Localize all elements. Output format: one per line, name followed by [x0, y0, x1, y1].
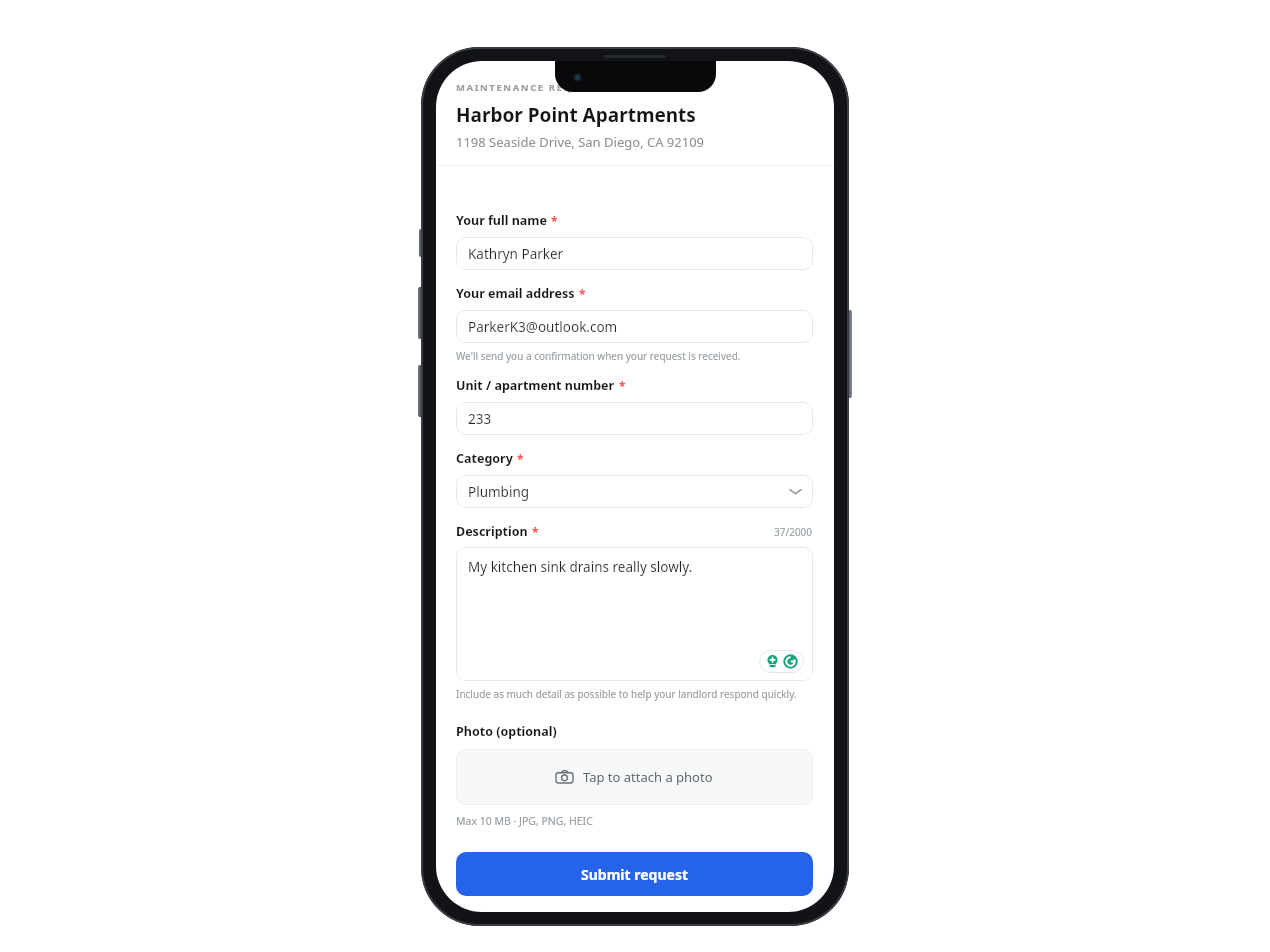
staticText: Max 10 MB · JPG, PNG, HEIC	[456, 814, 593, 828]
staticText: Kathryn Parker	[468, 245, 564, 263]
staticText: *	[551, 213, 558, 229]
staticText: Include as much detail as possible to he…	[456, 687, 797, 701]
staticText: Description	[456, 523, 528, 540]
staticText: Harbor Point Apartments	[456, 102, 696, 128]
staticText: 37/2000	[774, 525, 813, 539]
staticText: Photo (optional)	[456, 723, 557, 740]
staticText: Submit request	[581, 865, 688, 884]
button[interactable]: My kitchen sink drains really slowly.	[456, 547, 813, 681]
staticText: Category	[456, 450, 513, 467]
button[interactable]: 233	[456, 402, 813, 435]
staticText: *	[532, 524, 539, 540]
staticText: My kitchen sink drains really slowly.	[468, 558, 693, 576]
staticText: ParkerK3@outlook.com	[468, 318, 618, 336]
button[interactable]: Grammarly suggestions	[759, 650, 804, 673]
button[interactable]: Kathryn Parker	[456, 237, 813, 270]
staticText: *	[517, 451, 524, 467]
button[interactable]: Submit request	[456, 852, 813, 896]
staticText: *	[619, 378, 626, 394]
staticText: 233	[468, 410, 492, 428]
staticText: We'll send you a confirmation when your …	[456, 349, 741, 363]
button[interactable]: Tap to attach a photo	[456, 749, 813, 805]
button[interactable]: ParkerK3@outlook.com	[456, 310, 813, 343]
button[interactable]: Plumbing	[456, 475, 813, 508]
staticText: Tap to attach a photo	[583, 768, 713, 786]
staticText: MAINTENANCE REQUEST	[456, 81, 603, 94]
staticText: Plumbing	[468, 483, 530, 501]
staticText: Your full name	[456, 212, 547, 229]
staticText: Your email address	[456, 285, 575, 302]
staticText: *	[579, 286, 586, 302]
staticText: Unit / apartment number	[456, 377, 615, 394]
staticText: 1198 Seaside Drive, San Diego, CA 92109	[456, 133, 705, 151]
